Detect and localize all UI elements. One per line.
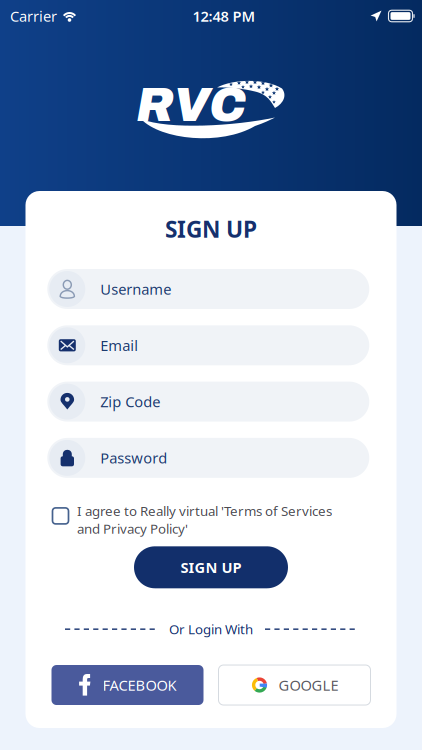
staticText: I agree to Really virtual 'Terms of Serv…: [77, 502, 332, 537]
staticText: Email: [100, 336, 138, 355]
button[interactable]: Password: [47, 438, 369, 478]
staticText: Carrier: [10, 6, 57, 26]
staticText: Password: [100, 448, 167, 468]
staticText: SIGN UP: [165, 214, 257, 244]
staticText: SIGN UP: [180, 558, 241, 577]
staticText: FACEBOOK: [102, 675, 176, 695]
button[interactable]: FACEBOOK: [51, 665, 203, 705]
staticText: Zip Code: [100, 392, 160, 411]
staticText: Or Login With: [169, 620, 253, 638]
button[interactable]: Email: [47, 325, 369, 365]
staticText: RVC: [136, 79, 246, 131]
button[interactable]: Zip Code: [47, 382, 369, 422]
staticText: Username: [100, 279, 171, 299]
button[interactable]: Username: [47, 269, 369, 309]
staticText: GOOGLE: [278, 675, 338, 695]
staticText: 12:48 PM: [192, 6, 255, 26]
button[interactable]: Agree to terms and privacy policy: [52, 502, 68, 524]
button[interactable]: GOOGLE: [218, 665, 370, 705]
button[interactable]: SIGN UP: [134, 546, 288, 588]
